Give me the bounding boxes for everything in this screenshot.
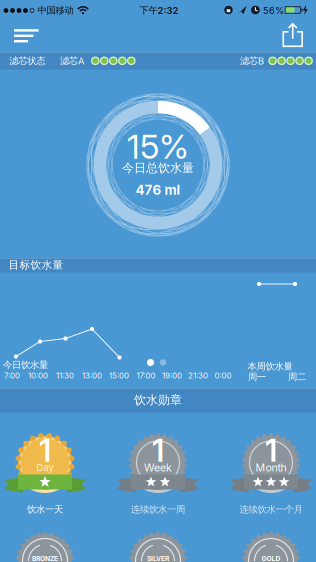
staticText: SILVER: [147, 555, 169, 562]
staticText: 56%: [263, 5, 284, 16]
staticText: GOLD: [261, 555, 280, 562]
staticText: 周一: [248, 371, 266, 383]
staticText: 1: [265, 432, 277, 469]
staticText: 饮水一天: [27, 504, 63, 515]
staticText: 11:30: [56, 371, 74, 380]
staticText: 滤芯B: [240, 55, 264, 67]
staticText: Week: [144, 461, 172, 474]
staticText: 10:00: [28, 371, 48, 380]
staticText: 19:00: [162, 371, 182, 380]
staticText: 476 ml: [135, 182, 180, 198]
staticText: 滤芯状态: [9, 55, 45, 67]
staticText: 连续饮水一周: [131, 504, 185, 515]
staticText: 中国移动: [37, 5, 73, 16]
staticText: 1: [152, 432, 164, 469]
staticText: BRONZE: [32, 555, 58, 562]
staticText: 13:00: [82, 371, 102, 380]
staticText: 今日饮水量: [3, 359, 48, 371]
staticText: Day: [36, 462, 53, 473]
staticText: 21:30: [188, 371, 208, 380]
staticText: 15:00: [109, 371, 129, 380]
staticText: 饮水勋章: [134, 393, 182, 407]
staticText: 滤芯A: [60, 55, 84, 67]
staticText: 今日总饮水量: [122, 161, 194, 175]
staticText: 17:00: [136, 371, 155, 380]
staticText: 7:00: [4, 371, 20, 380]
staticText: 目标饮水量: [8, 258, 63, 271]
staticText: 周二: [288, 371, 306, 383]
staticText: 下午2:32: [139, 5, 178, 16]
staticText: 1: [39, 432, 51, 469]
staticText: 连续饮水一个月: [239, 504, 302, 515]
staticText: 0:00: [214, 371, 231, 380]
staticText: 15%: [127, 127, 189, 166]
staticText: 本周饮水量: [247, 361, 292, 372]
staticText: Month: [255, 461, 286, 474]
